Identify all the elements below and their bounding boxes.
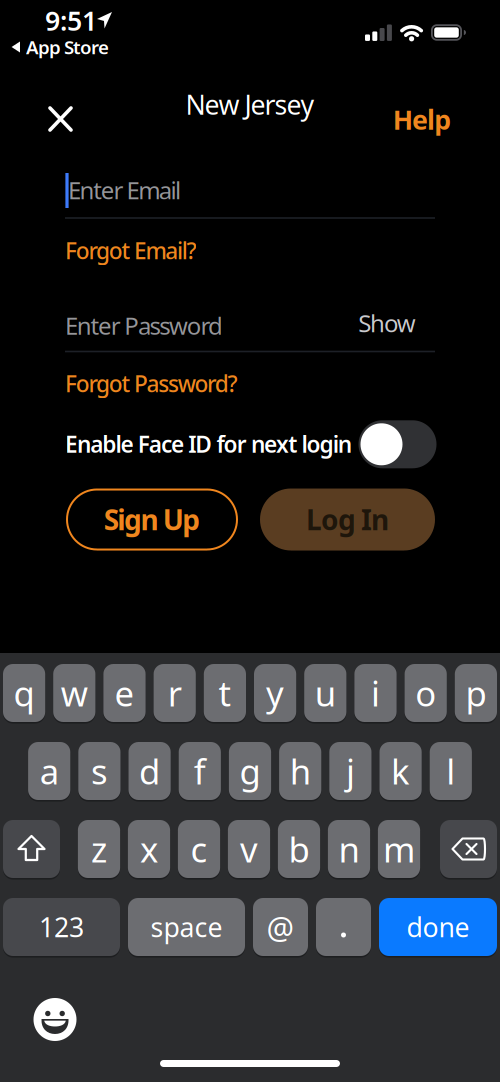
button[interactable]: Log In <box>260 488 435 550</box>
button[interactable]: u <box>304 663 346 723</box>
button[interactable]: space <box>128 897 245 957</box>
staticText: a <box>40 748 59 794</box>
button[interactable]: Delete <box>440 819 497 879</box>
staticText: z <box>91 826 107 872</box>
button[interactable]: x <box>128 819 170 879</box>
staticText: Enter Email <box>68 174 181 206</box>
button[interactable]: k <box>379 741 422 801</box>
button[interactable]: @ <box>253 897 308 957</box>
staticText: App Store <box>26 35 109 59</box>
button[interactable]: q <box>3 663 45 723</box>
button[interactable]: Show <box>358 307 416 339</box>
staticText: k <box>391 748 410 794</box>
staticText: Sign Up <box>104 501 200 538</box>
staticText: Enter Password <box>65 310 223 341</box>
button[interactable]: a <box>28 741 70 801</box>
staticText: m <box>383 826 415 872</box>
button[interactable]: Close <box>47 105 74 133</box>
staticText: w <box>61 670 88 716</box>
button[interactable]: d <box>128 741 171 801</box>
staticText: q <box>14 670 35 716</box>
button[interactable]: Enter Email <box>65 165 435 215</box>
staticText: Enable Face ID for next login <box>65 429 352 459</box>
button[interactable]: s <box>78 741 120 801</box>
button[interactable]: j <box>329 741 371 801</box>
staticText: space <box>150 909 222 945</box>
button[interactable]: done <box>379 897 497 957</box>
staticText: l <box>446 748 455 794</box>
staticText: b <box>288 826 309 872</box>
staticText: Log In <box>306 501 389 538</box>
staticText: s <box>91 748 108 794</box>
staticText: o <box>415 670 436 716</box>
button[interactable]: w <box>53 663 95 723</box>
staticText: j <box>346 748 355 794</box>
button[interactable]: Emoji <box>33 998 76 1041</box>
button[interactable]: i <box>354 663 397 723</box>
staticText: r <box>168 670 182 716</box>
staticText: Forgot Email? <box>65 235 196 265</box>
button[interactable]: r <box>154 663 196 723</box>
button[interactable]: f <box>179 741 221 801</box>
button[interactable]: z <box>78 819 120 879</box>
staticText: Forgot Password? <box>65 368 237 398</box>
button[interactable]: h <box>279 741 321 801</box>
button[interactable]: . <box>316 897 371 957</box>
button[interactable]: g <box>229 741 271 801</box>
button[interactable]: 123 <box>3 897 120 957</box>
staticText: g <box>239 748 260 794</box>
staticText: f <box>194 748 206 794</box>
staticText: 9:51 <box>45 3 97 38</box>
button[interactable]: y <box>254 663 296 723</box>
button[interactable]: Back to App Store <box>11 35 109 59</box>
button[interactable]: Sign Up <box>66 488 238 550</box>
button[interactable]: v <box>228 819 270 879</box>
button[interactable]: Forgot Email? <box>65 235 325 265</box>
button[interactable]: Shift <box>3 819 60 879</box>
staticText: y <box>266 670 284 716</box>
staticText: d <box>139 748 160 794</box>
staticText: u <box>315 670 336 716</box>
staticText: New Jersey <box>185 87 314 122</box>
button[interactable]: p <box>455 663 497 723</box>
button[interactable]: Enter Password <box>65 300 435 350</box>
staticText: p <box>465 670 486 716</box>
staticText: t <box>218 670 231 716</box>
button[interactable]: c <box>178 819 220 879</box>
button[interactable]: Forgot Password? <box>65 368 325 398</box>
staticText: v <box>240 826 258 872</box>
button[interactable]: l <box>430 741 472 801</box>
staticText: n <box>338 826 359 872</box>
button[interactable]: o <box>405 663 447 723</box>
staticText: @ <box>266 907 294 947</box>
button[interactable]: e <box>103 663 146 723</box>
staticText: Show <box>358 307 416 339</box>
staticText: x <box>140 826 158 872</box>
staticText: Help <box>393 102 451 137</box>
button[interactable]: t <box>204 663 246 723</box>
staticText: done <box>406 909 469 945</box>
staticText: 123 <box>39 909 84 945</box>
button[interactable]: n <box>328 819 370 879</box>
staticText: e <box>114 670 134 716</box>
staticText: h <box>290 748 311 794</box>
staticText: c <box>190 826 207 872</box>
button[interactable]: Enable Face ID for next login <box>358 420 436 468</box>
button[interactable]: b <box>278 819 320 879</box>
button[interactable]: Help <box>393 102 451 137</box>
button[interactable]: m <box>378 819 420 879</box>
staticText: i <box>371 670 380 716</box>
